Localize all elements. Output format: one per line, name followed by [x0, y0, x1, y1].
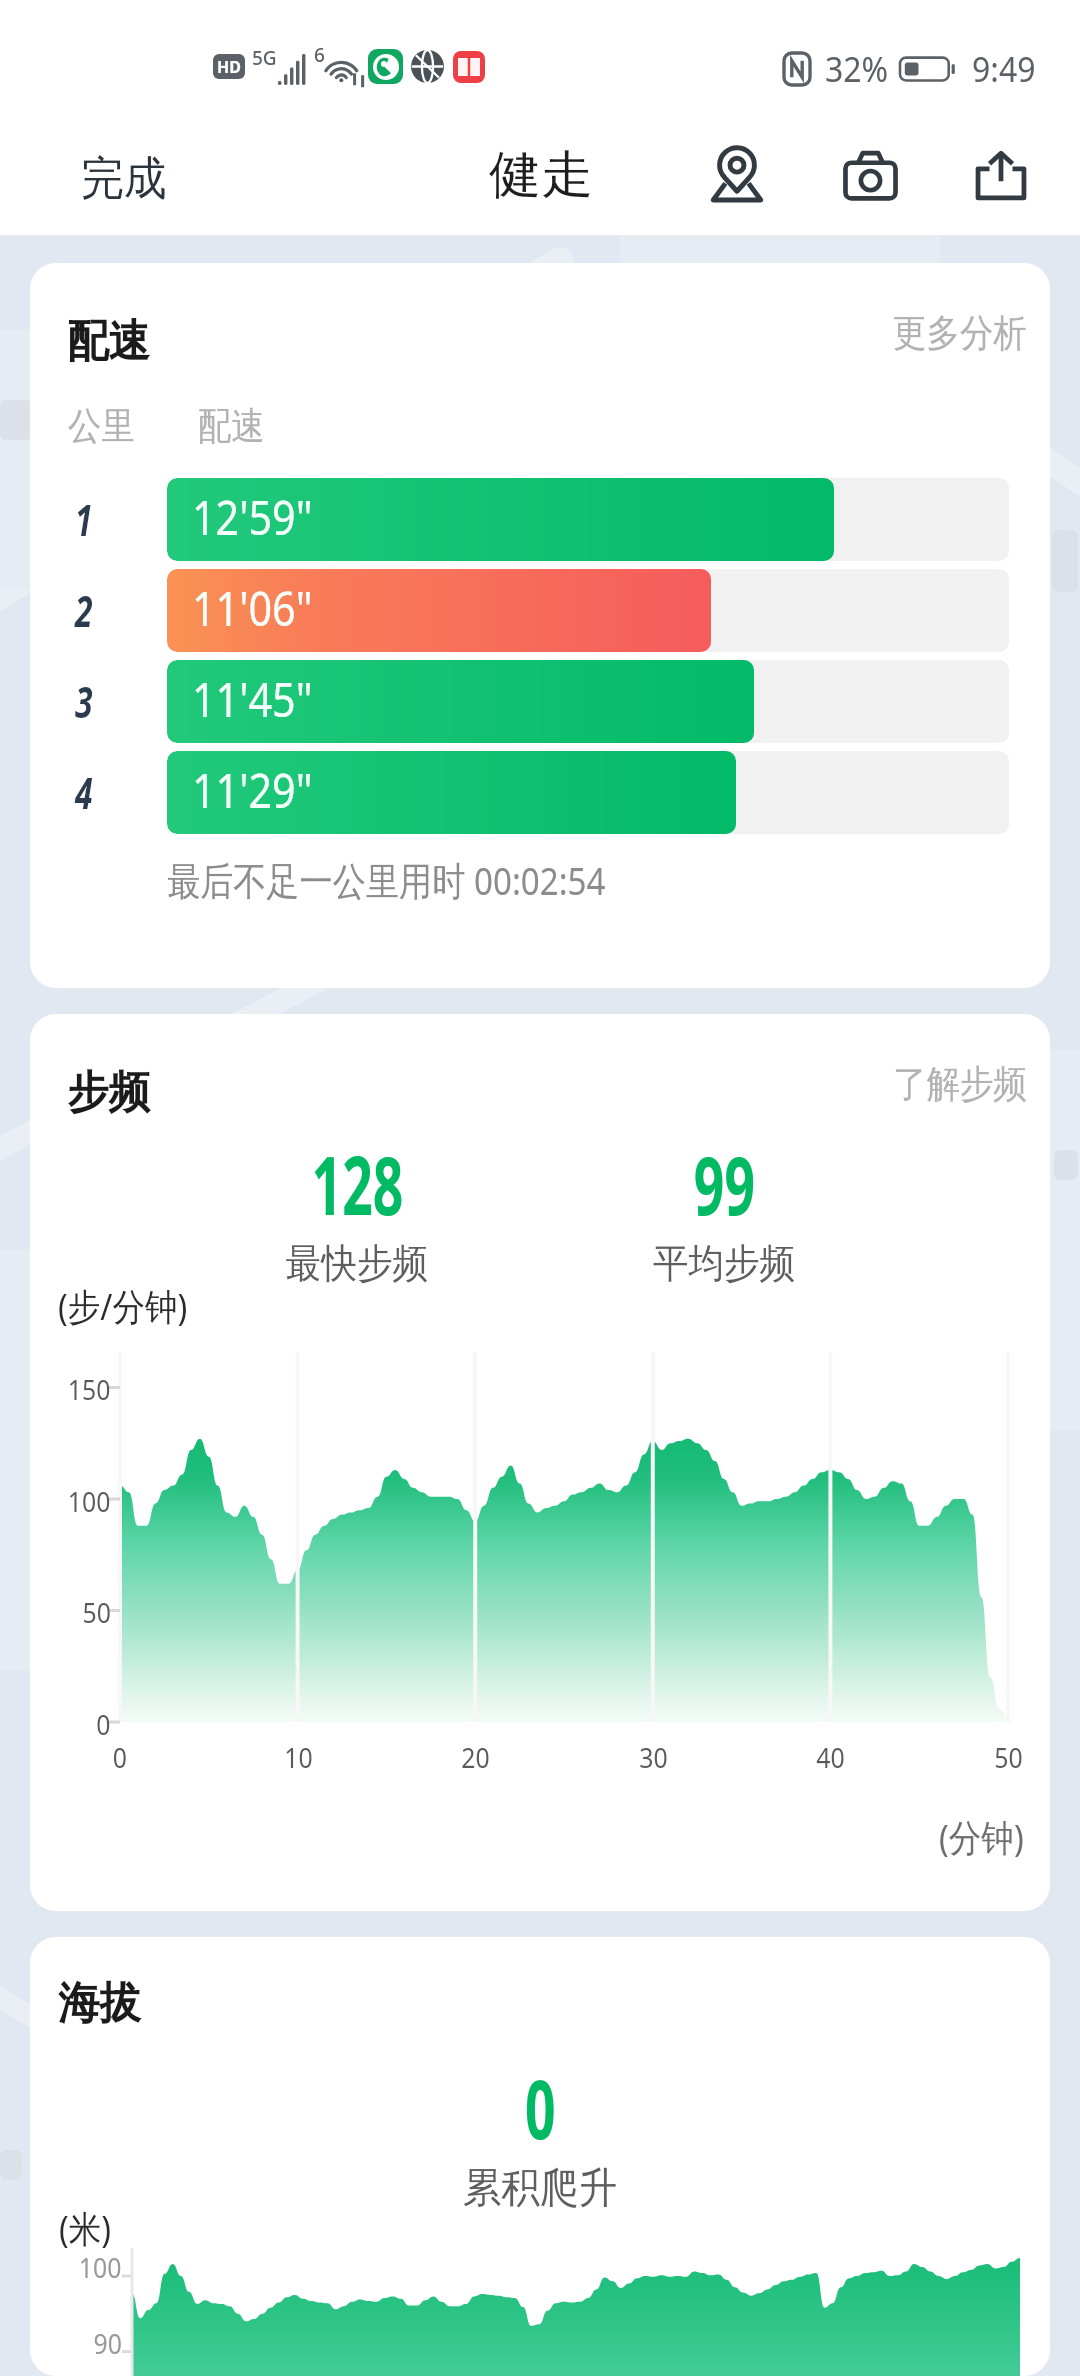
staticText: 4 [75, 763, 93, 822]
staticText: 11'29" [192, 757, 313, 822]
staticText: 配速 [67, 314, 150, 369]
staticText: 40 [816, 1739, 845, 1776]
button[interactable]: 完成 [63, 138, 191, 220]
staticText: 海拔 [58, 1976, 141, 2031]
staticText: 2 [75, 581, 93, 640]
staticText: 5G [252, 45, 277, 71]
staticText: 最后不足一公里用时 00:02:54 [167, 853, 606, 906]
staticText: 更多分析 [893, 309, 1027, 357]
staticText: (分钟) [939, 1811, 1024, 1862]
staticText: (步/分钟) [58, 1280, 187, 1331]
staticText: 11'45" [192, 666, 313, 731]
staticText: 128 [312, 1128, 403, 1238]
button[interactable] [30, 751, 1050, 834]
staticText: 9:49 [972, 46, 1036, 92]
button[interactable]: 了解步频 [893, 1060, 1045, 1108]
staticText: 90 [93, 2325, 122, 2362]
staticText: 30 [639, 1739, 668, 1776]
staticText: 0 [525, 2052, 556, 2162]
staticText: 累积爬升 [463, 2162, 617, 2215]
button[interactable] [30, 569, 1050, 652]
button[interactable]: 更多分析 [893, 309, 1045, 357]
staticText: 完成 [81, 150, 167, 208]
staticText: 100 [79, 2249, 122, 2286]
staticText: 150 [68, 1371, 111, 1408]
staticText: 3 [75, 672, 93, 731]
staticText: 12'59" [192, 484, 313, 549]
staticText: 平均步频 [653, 1238, 795, 1288]
staticText: 最快步频 [286, 1238, 428, 1288]
button[interactable] [30, 660, 1050, 743]
staticText: 20 [461, 1739, 490, 1776]
staticText: 0 [96, 1706, 111, 1743]
staticText: 1 [75, 490, 93, 549]
staticText: 0 [113, 1739, 127, 1776]
staticText: 了解步频 [893, 1060, 1027, 1108]
button[interactable]: 99 [574, 1128, 874, 1288]
button[interactable]: Share [946, 119, 1058, 231]
staticText: 公里 [68, 402, 135, 450]
staticText: 11'06" [192, 575, 313, 640]
staticText: 99 [694, 1128, 755, 1238]
staticText: 健走 [489, 143, 593, 207]
staticText: (米) [59, 2202, 112, 2253]
staticText: 32% [825, 46, 889, 92]
button[interactable]: Camera [814, 119, 926, 231]
staticText: HD [217, 56, 241, 78]
staticText: 配速 [198, 402, 265, 450]
staticText: 50 [82, 1594, 111, 1631]
button[interactable] [30, 478, 1050, 561]
staticText: 步频 [67, 1065, 150, 1120]
button[interactable]: Map [682, 119, 794, 231]
staticText: 50 [994, 1739, 1023, 1776]
button[interactable]: 128 [207, 1128, 507, 1288]
staticText: 100 [68, 1483, 111, 1520]
staticText: 10 [284, 1739, 313, 1776]
staticText: 6 [314, 42, 325, 68]
